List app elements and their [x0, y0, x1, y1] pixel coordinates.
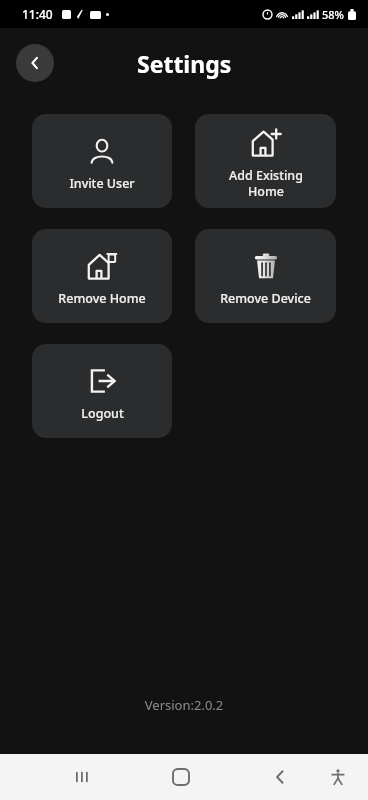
staticText: 58%	[322, 7, 344, 22]
button[interactable]: Back	[258, 755, 302, 799]
button[interactable]: Logout	[32, 344, 172, 438]
staticText: Remove Home	[58, 290, 146, 307]
staticText: Version:2.0.2	[0, 696, 368, 714]
staticText: Remove Device	[220, 290, 311, 307]
staticText: Add Existing Home	[229, 167, 303, 199]
button[interactable]: Back	[16, 44, 54, 82]
staticText: Logout	[81, 405, 124, 422]
staticText: Settings	[137, 48, 232, 79]
button[interactable]: Remove Home	[32, 229, 172, 323]
button[interactable]: Accessibility	[316, 755, 360, 799]
staticText: Invite User	[69, 175, 135, 192]
button[interactable]: Home	[159, 755, 203, 799]
button[interactable]: Remove Device	[195, 229, 336, 323]
button[interactable]: Recents	[60, 755, 104, 799]
staticText: 11:40	[22, 6, 53, 22]
button[interactable]: Invite User	[32, 114, 172, 208]
button[interactable]: Add Existing Home	[195, 114, 336, 208]
